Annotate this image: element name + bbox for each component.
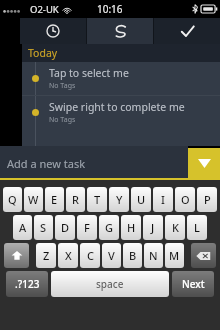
staticText: G bbox=[105, 220, 113, 235]
staticText: J bbox=[151, 220, 155, 235]
staticText: M bbox=[169, 248, 180, 263]
staticText: O bbox=[181, 192, 190, 207]
staticText: A bbox=[19, 220, 27, 235]
staticText: Next bbox=[182, 277, 205, 291]
button[interactable]: Tasks bbox=[87, 18, 153, 44]
staticText: Y bbox=[116, 192, 123, 207]
staticText: Add a new task bbox=[7, 156, 86, 171]
staticText: C bbox=[87, 248, 94, 263]
button[interactable]: J bbox=[143, 215, 163, 240]
staticText: space bbox=[96, 277, 124, 291]
staticText: Z bbox=[43, 248, 50, 263]
button[interactable]: Y bbox=[109, 187, 129, 212]
button[interactable]: Scheduled bbox=[20, 18, 86, 44]
staticText: I bbox=[161, 192, 165, 207]
button[interactable]: Z bbox=[36, 243, 56, 268]
button[interactable]: I bbox=[153, 187, 173, 212]
button[interactable]: V bbox=[102, 243, 121, 268]
staticText: L bbox=[194, 220, 200, 235]
button[interactable]: Shift bbox=[4, 243, 29, 268]
button[interactable]: H bbox=[121, 215, 141, 240]
button[interactable]: Show options bbox=[188, 148, 220, 178]
button[interactable]: F bbox=[77, 215, 97, 240]
staticText: Q bbox=[8, 192, 17, 207]
button[interactable]: B bbox=[123, 243, 142, 268]
staticText: U bbox=[137, 192, 146, 207]
button[interactable]: D bbox=[55, 215, 75, 240]
button[interactable]: Next bbox=[172, 271, 214, 297]
button[interactable]: N bbox=[144, 243, 163, 268]
staticText: O2-UK bbox=[30, 3, 59, 16]
button[interactable]: Completed bbox=[154, 18, 220, 44]
staticText: D bbox=[61, 220, 70, 235]
button[interactable]: Backspace bbox=[191, 243, 216, 268]
button[interactable]: L bbox=[187, 215, 207, 240]
staticText: No Tags bbox=[49, 81, 76, 91]
button[interactable]: E bbox=[45, 187, 64, 212]
button[interactable]: A bbox=[13, 215, 32, 240]
staticText: T bbox=[94, 192, 101, 207]
button[interactable]: Add a new task bbox=[0, 148, 188, 178]
staticText: V bbox=[108, 248, 115, 263]
staticText: W bbox=[28, 192, 39, 207]
button[interactable]: Swipe right to complete me bbox=[22, 96, 220, 129]
staticText: X bbox=[65, 248, 72, 263]
button[interactable]: G bbox=[99, 215, 119, 240]
button[interactable]: C bbox=[80, 243, 100, 268]
button[interactable]: X bbox=[58, 243, 78, 268]
staticText: R bbox=[72, 192, 79, 207]
button[interactable]: W bbox=[24, 187, 43, 212]
button[interactable]: .?123 bbox=[6, 271, 48, 297]
staticText: .?123 bbox=[15, 277, 40, 291]
staticText: No Tags bbox=[49, 115, 76, 125]
button[interactable]: Tap to select me bbox=[22, 62, 220, 95]
button[interactable]: space bbox=[51, 271, 169, 297]
button[interactable]: T bbox=[87, 187, 107, 212]
button[interactable]: R bbox=[66, 187, 85, 212]
staticText: F bbox=[84, 220, 90, 235]
staticText: Tap to select me bbox=[49, 66, 129, 80]
button[interactable]: Q bbox=[3, 187, 22, 212]
staticText: 10:16 bbox=[97, 2, 123, 16]
button[interactable]: P bbox=[197, 187, 217, 212]
button[interactable]: U bbox=[131, 187, 151, 212]
staticText: H bbox=[127, 220, 136, 235]
staticText: K bbox=[172, 220, 179, 235]
button[interactable]: O bbox=[175, 187, 195, 212]
staticText: B bbox=[129, 248, 137, 263]
staticText: Today bbox=[28, 46, 58, 60]
staticText: N bbox=[149, 248, 158, 263]
button[interactable]: M bbox=[165, 243, 184, 268]
button[interactable]: K bbox=[165, 215, 185, 240]
staticText: S bbox=[40, 220, 47, 235]
staticText: P bbox=[204, 192, 211, 207]
staticText: Swipe right to complete me bbox=[49, 100, 185, 114]
staticText: E bbox=[51, 192, 58, 207]
button[interactable]: S bbox=[34, 215, 53, 240]
